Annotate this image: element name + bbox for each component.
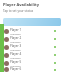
staticText: Available xyxy=(10,56,21,59)
button[interactable]: Player 2 xyxy=(0,35,64,43)
staticText: Player Availability xyxy=(3,2,39,7)
staticText: Available xyxy=(10,40,21,43)
staticText: Player 3 xyxy=(10,44,22,48)
button[interactable]: Player 5 xyxy=(0,59,64,67)
staticText: Player 6 xyxy=(10,67,22,71)
staticText: Available xyxy=(10,32,21,35)
button[interactable]: Player 4 xyxy=(0,51,64,59)
staticText: Player 5 xyxy=(10,60,22,64)
button[interactable]: Player 1 xyxy=(0,27,64,35)
staticText: Available xyxy=(10,64,21,67)
button[interactable]: Player 6 xyxy=(0,67,64,72)
staticText: Player 2 xyxy=(10,36,22,40)
button[interactable]: Player 3 xyxy=(0,43,64,51)
staticText: Available xyxy=(10,48,21,51)
staticText: Tap to set your status xyxy=(3,9,34,13)
button[interactable] xyxy=(3,18,61,26)
staticText: Player 1 xyxy=(10,28,22,32)
staticText: Player 4 xyxy=(10,52,22,56)
